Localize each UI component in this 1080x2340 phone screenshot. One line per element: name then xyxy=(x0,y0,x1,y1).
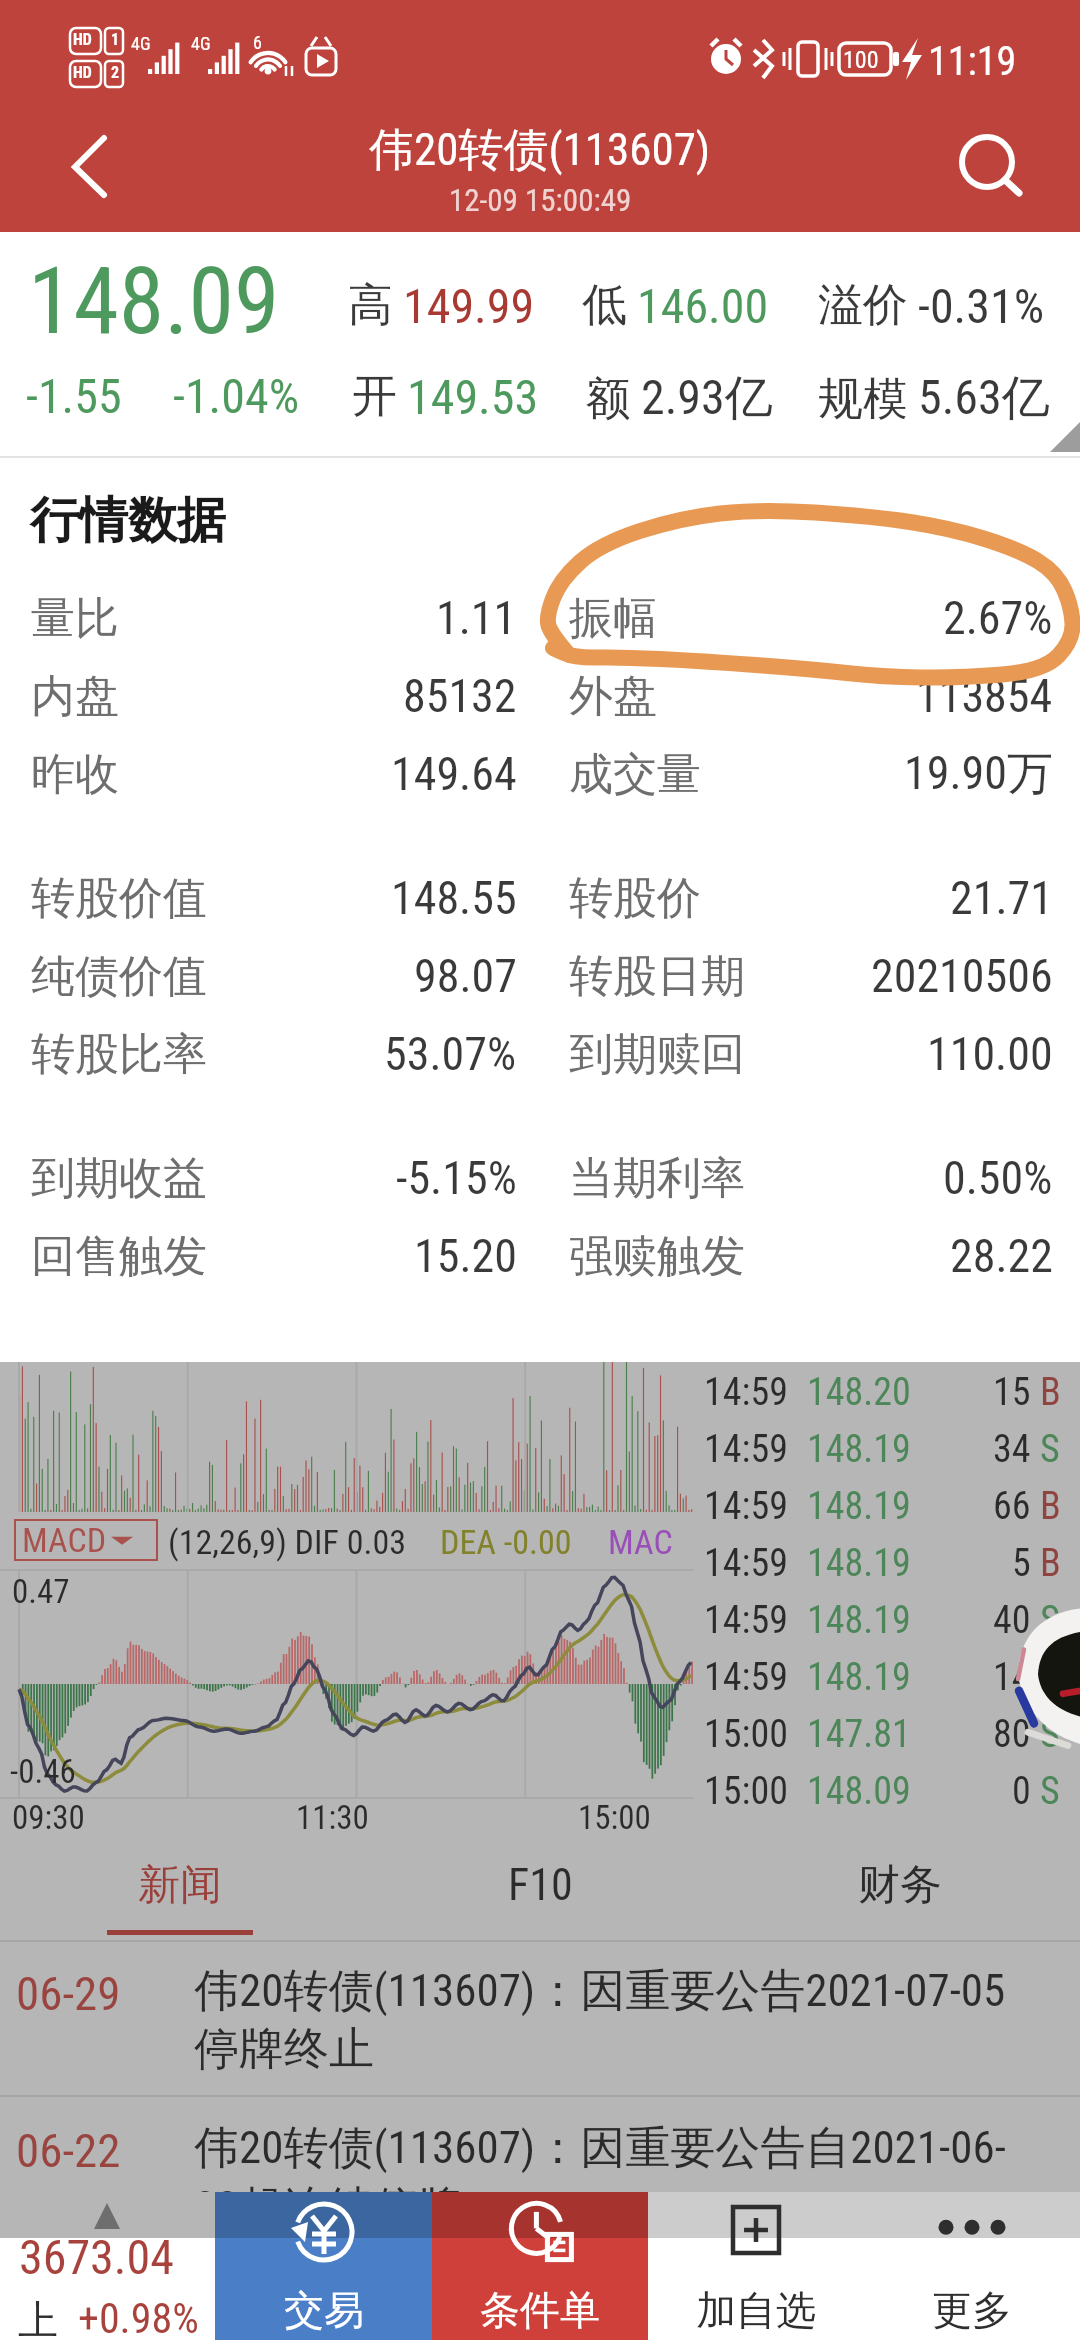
staticText: 21.71 xyxy=(950,871,1053,925)
staticText: 15 xyxy=(993,1370,1031,1415)
staticText: 强赎触发 xyxy=(569,1229,745,1284)
staticText: 148.19 xyxy=(807,1655,911,1700)
staticText: -1.55 xyxy=(26,368,122,424)
staticText: 更多 xyxy=(932,2285,1012,2335)
staticText: 85132 xyxy=(403,669,517,723)
staticText: 转股价值 xyxy=(31,871,207,926)
button[interactable]: 交易 xyxy=(215,2192,432,2340)
staticText: 内盘 xyxy=(31,669,119,724)
staticText: 上 xyxy=(18,2295,58,2340)
staticText: 伟20转债(113607)：因重要公告2021-07-05 停牌终止 xyxy=(194,1963,1006,2077)
staticText: 15.20 xyxy=(414,1229,517,1283)
staticText: 148.19 xyxy=(807,1484,911,1529)
staticText: 34 xyxy=(993,1427,1031,1472)
staticText: 53.07% xyxy=(384,1027,517,1081)
staticText: 110.00 xyxy=(927,1027,1053,1081)
staticText: 06-22 xyxy=(16,2123,121,2178)
staticText: S xyxy=(1040,1427,1060,1472)
staticText: 0 xyxy=(1012,1769,1031,1814)
staticText: 11:19 xyxy=(928,38,1017,85)
staticText: 0.47 xyxy=(12,1572,70,1611)
staticText: 条件单 xyxy=(480,2285,600,2335)
staticText: 148.55 xyxy=(391,871,517,925)
staticText: MACD xyxy=(22,1520,107,1560)
staticText: MAC xyxy=(608,1522,673,1562)
staticText: 28.22 xyxy=(950,1229,1053,1283)
button[interactable]: 更多 xyxy=(864,2192,1080,2340)
staticText: 5 xyxy=(1012,1541,1031,1586)
button[interactable]: 新闻 xyxy=(0,1844,360,1940)
staticText: 0.50% xyxy=(943,1151,1053,1205)
staticText: 09:30 xyxy=(12,1798,85,1837)
staticText: 规模 xyxy=(818,371,908,428)
staticText: 2.67% xyxy=(943,591,1053,645)
staticText: S xyxy=(1040,1655,1060,1700)
staticText: 低 xyxy=(582,277,627,334)
staticText: 149.53 xyxy=(407,369,539,425)
staticText: 2 xyxy=(111,63,120,82)
staticText: 14 xyxy=(993,1655,1031,1700)
staticText: 14:59 xyxy=(704,1484,788,1529)
staticText: 财务 xyxy=(858,1859,942,1912)
staticText: 1.11 xyxy=(436,591,517,645)
button[interactable]: 财务 xyxy=(720,1844,1080,1940)
staticText: F10 xyxy=(508,1859,573,1911)
staticText: 额 xyxy=(586,371,631,428)
staticText: S xyxy=(1040,1712,1060,1757)
staticText: 20210506 xyxy=(871,949,1053,1003)
staticText: 6 xyxy=(253,32,262,53)
staticText: 80 xyxy=(993,1712,1031,1757)
button[interactable]: Back xyxy=(0,110,160,232)
staticText: 到期赎回 xyxy=(569,1027,745,1082)
staticText: 新闻 xyxy=(138,1859,222,1912)
staticText: 开 xyxy=(352,368,397,425)
button[interactable]: 06-29 xyxy=(0,1940,1080,2095)
staticText: S xyxy=(1040,1598,1060,1643)
staticText: 149.64 xyxy=(391,747,517,801)
staticText: 到期收益 xyxy=(31,1151,207,1206)
staticText: 4G xyxy=(191,33,211,54)
staticText: 当期利率 xyxy=(569,1151,745,1206)
staticText: B xyxy=(1040,1484,1061,1529)
staticText: +0.98% xyxy=(78,2294,199,2340)
button[interactable]: Search xyxy=(920,110,1080,232)
staticText: 伟20转债(113607) xyxy=(369,122,711,179)
staticText: 148.20 xyxy=(807,1370,911,1415)
staticText: 1 xyxy=(111,30,120,49)
staticText: 14:59 xyxy=(704,1598,788,1643)
button[interactable]: MACD xyxy=(14,1519,158,1561)
staticText: 15:00 xyxy=(704,1712,788,1757)
staticText: HD xyxy=(73,30,92,49)
staticText: 15:00 xyxy=(704,1769,788,1814)
staticText: 14:59 xyxy=(704,1427,788,1472)
staticText: 加自选 xyxy=(696,2285,816,2335)
staticText: 11:30 xyxy=(296,1798,369,1837)
staticText: 转股日期 xyxy=(569,949,745,1004)
button[interactable]: 3673.04 xyxy=(0,2192,215,2340)
staticText: 交易 xyxy=(284,2285,364,2335)
button[interactable]: 条件单 xyxy=(432,2192,648,2340)
staticText: -1.04% xyxy=(173,368,300,424)
staticText: 2.93亿 xyxy=(641,368,773,428)
staticText: 3673.04 xyxy=(19,2229,174,2285)
button[interactable]: F10 xyxy=(360,1844,720,1940)
staticText: 148.09 xyxy=(807,1769,911,1814)
staticText: 148.19 xyxy=(807,1541,911,1586)
staticText: -5.15% xyxy=(396,1151,517,1205)
staticText: 转股比率 xyxy=(31,1027,207,1082)
staticText: B xyxy=(1040,1370,1061,1415)
button[interactable]: 06-22 xyxy=(0,2097,1080,2275)
staticText: 146.00 xyxy=(637,278,769,334)
button[interactable]: 加自选 xyxy=(648,2192,864,2340)
staticText: 纯债价值 xyxy=(31,949,207,1004)
staticText: 量比 xyxy=(31,591,119,646)
staticText: 4G xyxy=(131,33,151,54)
staticText: 行情数据 xyxy=(30,490,226,552)
staticText: 15:00 xyxy=(578,1798,651,1837)
staticText: 转股价 xyxy=(569,871,701,926)
staticText: 40 xyxy=(993,1598,1031,1643)
staticText: 148.09 xyxy=(28,248,280,356)
staticText: 高 xyxy=(348,277,393,334)
staticText: 66 xyxy=(993,1484,1031,1529)
staticText: (12,26,9) DIF 0.03 xyxy=(168,1522,406,1562)
